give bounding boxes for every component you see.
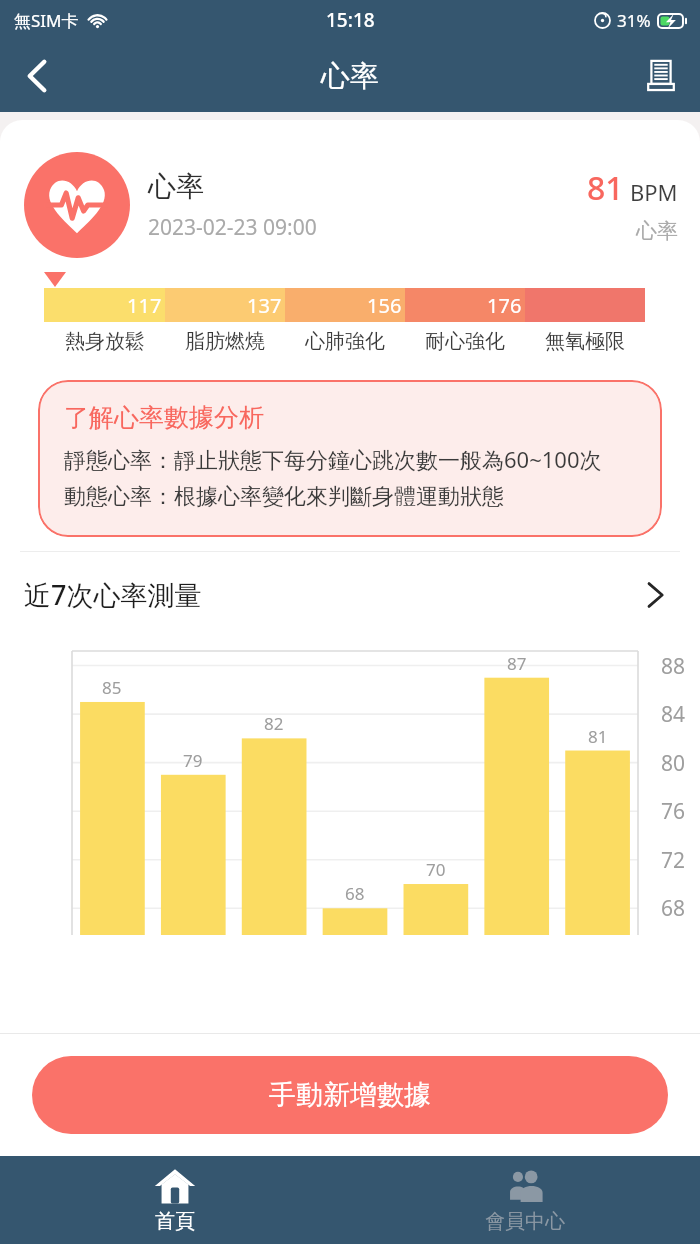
staticText: 15:18: [326, 7, 375, 33]
button[interactable]: Back: [8, 47, 66, 105]
staticText: 熱身放鬆: [65, 329, 145, 354]
staticText: 79: [183, 749, 203, 772]
staticText: 80: [661, 749, 686, 778]
button[interactable]: 了解心率數據分析: [38, 380, 662, 537]
staticText: 176: [487, 292, 522, 319]
button[interactable]: Records: [632, 47, 690, 105]
button[interactable]: 首頁: [0, 1156, 350, 1244]
staticText: 68: [345, 882, 365, 905]
staticText: 31%: [617, 9, 651, 32]
staticText: 2023-02-23 09:00: [148, 213, 317, 242]
staticText: 81: [587, 166, 624, 210]
staticText: 82: [264, 712, 284, 735]
staticText: 心率: [636, 218, 678, 244]
staticText: 靜態心率：靜止狀態下每分鐘心跳次數一般為60~100次: [64, 444, 602, 474]
staticText: 68: [661, 894, 686, 923]
staticText: 動態心率：根據心率變化來判斷身體運動狀態: [64, 483, 504, 511]
staticText: 156: [367, 292, 402, 319]
button[interactable]: 近7次心率測量: [0, 552, 700, 627]
staticText: 心率: [321, 58, 379, 95]
staticText: 117: [127, 292, 162, 319]
staticText: 137: [247, 292, 282, 319]
staticText: 會員中心: [485, 1209, 565, 1234]
staticText: 首頁: [155, 1209, 195, 1234]
staticText: 了解心率數據分析: [64, 402, 264, 433]
other: More: [638, 578, 672, 612]
staticText: 手動新增數據: [269, 1078, 431, 1112]
staticText: 88: [661, 652, 686, 681]
staticText: 心肺強化: [305, 329, 385, 354]
button[interactable]: 手動新增數據: [32, 1056, 668, 1134]
staticText: 心率: [148, 169, 204, 204]
staticText: 無SIM卡: [14, 9, 79, 32]
staticText: 耐心強化: [425, 329, 505, 354]
staticText: 無氧極限: [545, 329, 625, 354]
button[interactable]: 會員中心: [350, 1156, 700, 1244]
staticText: 87: [507, 652, 527, 675]
staticText: 脂肪燃燒: [185, 329, 265, 354]
staticText: 81: [588, 725, 608, 748]
staticText: 72: [661, 846, 686, 875]
staticText: 76: [661, 797, 686, 826]
staticText: BPM: [630, 177, 678, 207]
staticText: 85: [102, 676, 122, 699]
staticText: 近7次心率測量: [24, 576, 638, 613]
staticText: 84: [661, 700, 686, 729]
staticText: 70: [426, 858, 446, 881]
